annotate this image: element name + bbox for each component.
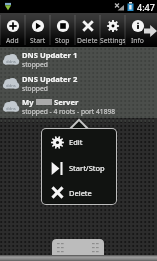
button[interactable]: ddns: [0, 71, 157, 95]
staticText: Edit: [69, 137, 83, 147]
staticText: DNS Updater 1: [22, 50, 78, 60]
staticText: Delete: [69, 188, 92, 198]
staticText: stopped: [22, 84, 48, 93]
button[interactable]: ddns: [0, 95, 157, 118]
staticText: Server: [54, 97, 79, 107]
staticText: Stop: [55, 36, 70, 45]
staticText: ddns: [6, 106, 16, 112]
staticText: Add: [6, 36, 19, 45]
staticText: stopped: [22, 60, 48, 69]
staticText: Delete: [77, 36, 98, 45]
staticText: Start/Stop: [69, 163, 105, 173]
button[interactable]: Add: [0, 13, 25, 47]
staticText: Start: [30, 36, 46, 45]
staticText: Info: [131, 36, 144, 45]
staticText: DNS Updater 2: [22, 74, 78, 84]
button[interactable]: Start: [25, 13, 50, 47]
button[interactable]: Stop: [50, 13, 75, 47]
staticText: ddns: [6, 59, 16, 65]
staticText: Settings: [100, 36, 125, 45]
staticText: 4:47: [137, 1, 155, 13]
button[interactable]: Delete: [42, 181, 116, 204]
button[interactable]: Edit: [42, 129, 116, 155]
staticText: My: [22, 97, 34, 107]
button[interactable]: Start/Stop: [42, 155, 116, 181]
button[interactable]: More actions: [143, 13, 157, 47]
button[interactable]: ddns: [0, 47, 157, 71]
button[interactable]: Delete: [75, 13, 100, 47]
staticText: ddns: [6, 83, 16, 89]
button[interactable]: Settings: [100, 13, 125, 47]
staticText: stopped - 4 roots - port 41898: [22, 107, 116, 116]
button[interactable]: Info: [125, 13, 150, 47]
